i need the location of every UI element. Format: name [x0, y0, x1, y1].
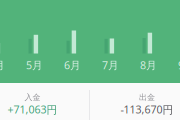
- button[interactable]: 入金: [0, 88, 77, 120]
- staticText: 4月: [0, 58, 5, 72]
- staticText: 7月: [102, 58, 119, 72]
- staticText: 入金: [24, 92, 40, 102]
- staticText: 6月: [64, 58, 81, 72]
- staticText: 9月: [178, 58, 180, 72]
- staticText: -113,670円: [120, 102, 173, 116]
- staticText: +71,063円: [7, 102, 57, 116]
- staticText: 5月: [26, 58, 43, 72]
- staticText: 8月: [140, 58, 157, 72]
- staticText: 出金: [139, 92, 155, 102]
- button[interactable]: 出金: [102, 88, 180, 120]
